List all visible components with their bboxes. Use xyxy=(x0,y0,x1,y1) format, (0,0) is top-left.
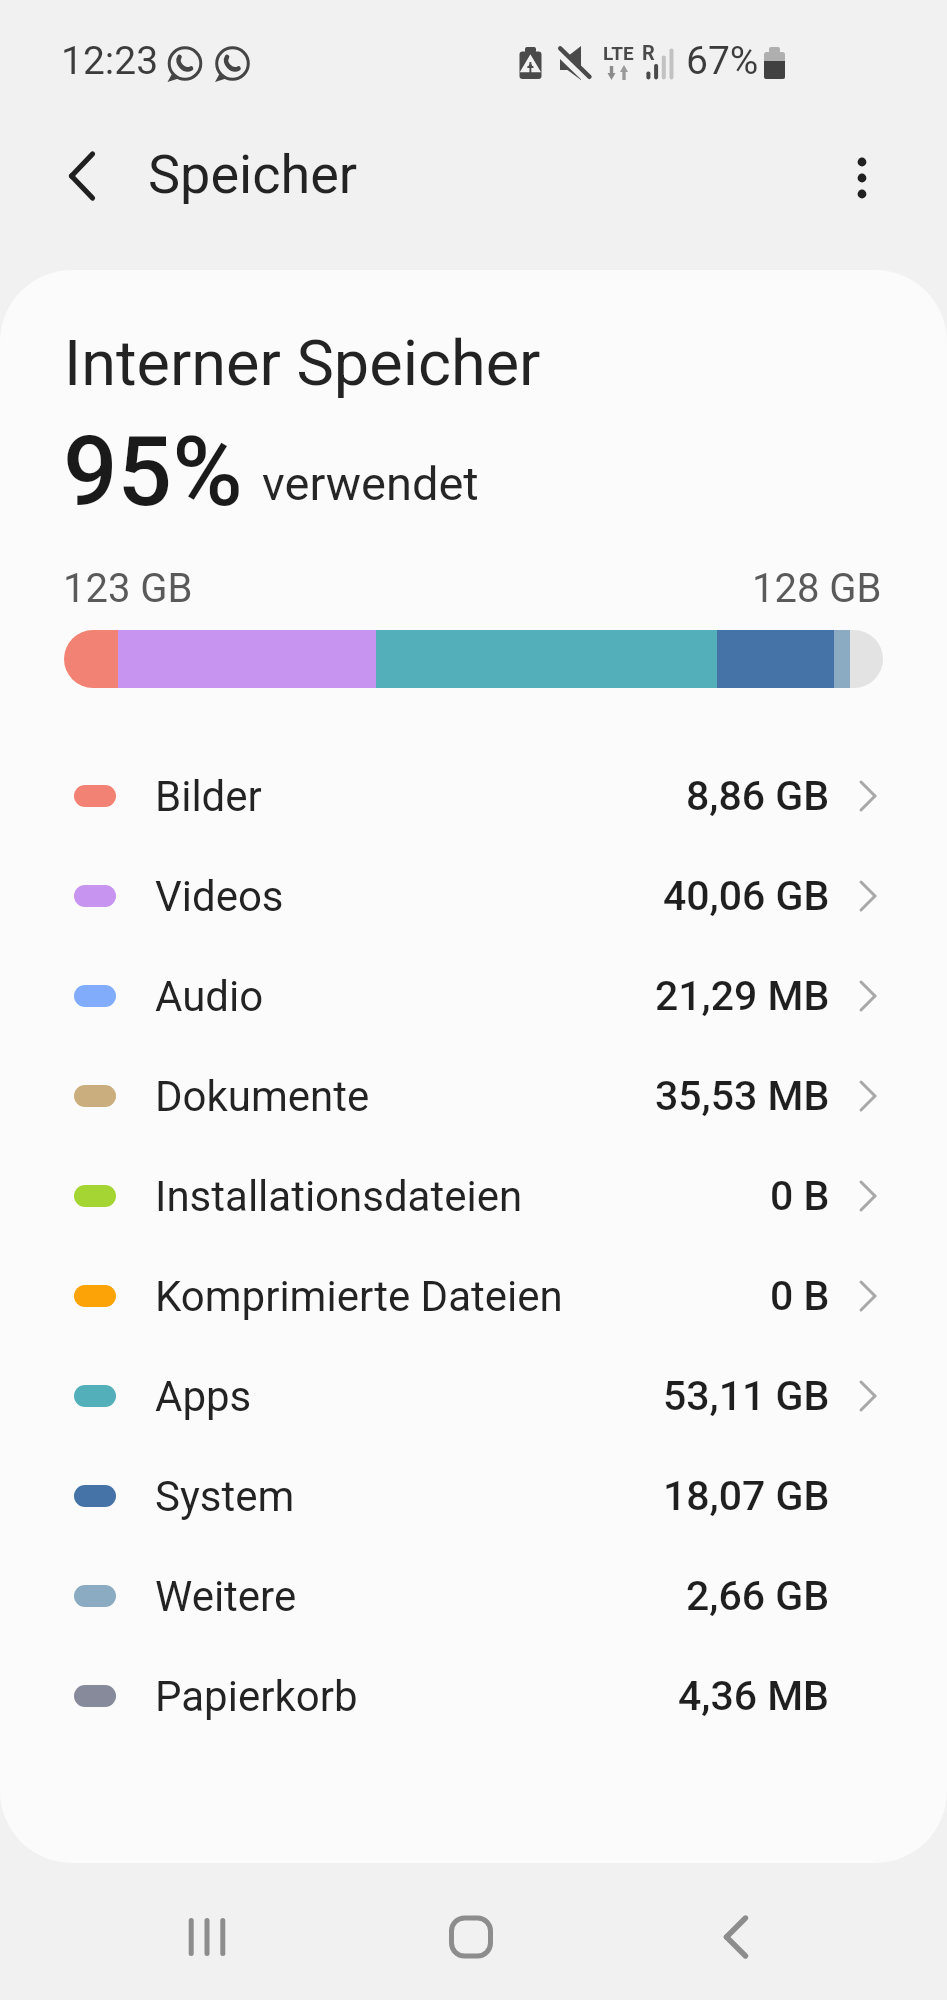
staticText: 12:23 xyxy=(61,38,159,84)
button[interactable]: Recent apps xyxy=(137,1870,277,2000)
staticText: 40,06 GB xyxy=(663,872,830,920)
staticText: Speicher xyxy=(148,143,358,206)
button[interactable]: Weitere xyxy=(0,1546,947,1646)
staticText: Installationsdateien xyxy=(155,1172,523,1221)
staticText: 21,29 MB xyxy=(655,972,830,1020)
button[interactable]: Back xyxy=(666,1870,806,2000)
staticText: 18,07 GB xyxy=(663,1472,830,1520)
staticText: 35,53 MB xyxy=(655,1072,830,1120)
button[interactable]: Home xyxy=(401,1870,541,2000)
button[interactable]: Dokumente xyxy=(0,1046,947,1146)
staticText: Bilder xyxy=(155,772,262,821)
staticText: 8,86 GB xyxy=(686,772,830,820)
staticText: 2,66 GB xyxy=(686,1572,830,1620)
button[interactable]: Audio xyxy=(0,946,947,1046)
staticText: 0 B xyxy=(770,1172,830,1220)
staticText: System xyxy=(155,1472,295,1521)
staticText: 128 GB xyxy=(752,565,882,612)
staticText: verwendet xyxy=(262,456,479,511)
staticText: 53,11 GB xyxy=(663,1372,830,1420)
staticText: 95% xyxy=(63,416,243,529)
button[interactable]: Videos xyxy=(0,846,947,946)
staticText: Apps xyxy=(155,1372,252,1421)
staticText: 4,36 MB xyxy=(678,1672,830,1720)
button[interactable]: Bilder xyxy=(0,746,947,846)
staticText: Videos xyxy=(155,872,284,921)
staticText: LTE xyxy=(603,42,634,64)
staticText: Papierkorb xyxy=(155,1672,358,1721)
staticText: Dokumente xyxy=(155,1072,370,1121)
staticText: 0 B xyxy=(770,1272,830,1320)
button[interactable]: Back xyxy=(46,140,118,212)
staticText: 123 GB xyxy=(63,565,193,612)
staticText: 67% xyxy=(686,38,759,84)
staticText: R xyxy=(642,41,655,64)
staticText: Audio xyxy=(155,972,264,1021)
button[interactable]: Installationsdateien xyxy=(0,1146,947,1246)
button[interactable]: Papierkorb xyxy=(0,1646,947,1746)
button[interactable]: More options xyxy=(826,142,898,214)
button[interactable]: System xyxy=(0,1446,947,1546)
button[interactable]: Komprimierte Dateien xyxy=(0,1246,947,1346)
staticText: Weitere xyxy=(155,1572,297,1621)
button[interactable]: Apps xyxy=(0,1346,947,1446)
staticText: Interner Speicher xyxy=(64,327,541,401)
staticText: Komprimierte Dateien xyxy=(155,1272,563,1321)
